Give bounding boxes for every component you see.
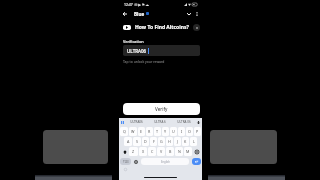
button[interactable]: F <box>150 137 157 146</box>
staticText: ULTRA06 <box>130 120 143 124</box>
button[interactable]: O <box>186 127 193 136</box>
button[interactable]: Enter <box>192 158 201 165</box>
staticText: N <box>178 149 181 154</box>
staticText: K <box>184 139 187 144</box>
button[interactable]: Verify <box>123 103 200 115</box>
button[interactable]: ULTRA 6 <box>148 118 172 126</box>
button[interactable]: More options <box>193 10 201 18</box>
staticText: Q <box>123 129 126 134</box>
staticText: ?123 <box>123 160 129 164</box>
button[interactable]: Y <box>162 127 169 136</box>
button[interactable]: Back <box>120 9 129 18</box>
button[interactable]: A <box>124 137 132 146</box>
button[interactable]: ULTRA06 <box>125 118 148 126</box>
staticText: R <box>148 129 151 134</box>
staticText: T <box>156 129 159 134</box>
button[interactable]: P <box>194 127 201 136</box>
staticText: U <box>172 129 175 134</box>
staticText: English <box>161 160 170 164</box>
staticText: W <box>131 129 135 134</box>
staticText: A <box>127 139 130 144</box>
button[interactable]: I <box>178 127 185 136</box>
staticText: P <box>196 129 199 134</box>
button[interactable]: ULTRA 06 <box>172 118 196 126</box>
button[interactable]: Q <box>120 127 128 136</box>
button[interactable]: Expand <box>185 10 193 18</box>
staticText: G <box>160 139 163 144</box>
button[interactable]: J <box>174 137 181 146</box>
staticText: B <box>169 149 172 154</box>
button[interactable] <box>43 130 108 164</box>
staticText: How To Find Altcoins? <box>135 24 189 31</box>
staticText: J <box>177 139 179 144</box>
staticText: V <box>160 149 163 154</box>
button[interactable]: Close <box>193 24 200 31</box>
staticText: ULTRA06 <box>127 48 147 54</box>
button[interactable]: Switch keyboard <box>133 158 139 165</box>
staticText: S <box>136 139 139 144</box>
button[interactable]: M <box>184 147 192 156</box>
staticText: ULTRA 6 <box>154 120 166 124</box>
staticText: Verification <box>123 39 144 44</box>
staticText: H <box>168 139 171 144</box>
button[interactable]: U <box>170 127 177 136</box>
staticText: C <box>151 149 154 154</box>
button[interactable]: N <box>175 147 183 156</box>
button[interactable] <box>210 130 277 164</box>
staticText: F <box>153 139 155 144</box>
button[interactable]: B <box>166 147 174 156</box>
button[interactable]: Z <box>129 147 138 156</box>
staticText: Verify <box>155 106 168 112</box>
button[interactable]: S <box>133 137 141 146</box>
button[interactable]: H <box>166 137 173 146</box>
staticText: D <box>144 139 147 144</box>
button[interactable]: E <box>138 127 145 136</box>
button[interactable]: X <box>139 147 147 156</box>
staticText: Blue <box>134 11 145 17</box>
staticText: I <box>181 129 183 134</box>
staticText: X <box>142 149 145 154</box>
staticText: E <box>140 129 143 134</box>
button[interactable]: D <box>142 137 149 146</box>
staticText: ULTRA 06 <box>177 120 191 124</box>
button[interactable]: ?123 <box>120 158 131 165</box>
staticText: Tap to unlock your reward <box>123 59 165 64</box>
staticText: M <box>186 149 190 154</box>
button[interactable]: W <box>129 127 137 136</box>
button[interactable]: V <box>157 147 165 156</box>
button[interactable]: G <box>158 137 165 146</box>
staticText: 12:47 ✉ ▶ ⚑ ☁ <box>124 2 149 7</box>
button[interactable]: Voice input <box>196 120 201 125</box>
button[interactable]: C <box>148 147 156 156</box>
staticText: Z <box>132 149 135 154</box>
button[interactable]: English <box>141 158 189 165</box>
staticText: O <box>188 129 191 134</box>
button[interactable]: Clipboard <box>120 120 125 125</box>
button[interactable]: R <box>146 127 153 136</box>
button[interactable]: ULTRA06 <box>123 45 200 56</box>
button[interactable]: K <box>182 137 189 146</box>
button[interactable]: T <box>154 127 161 136</box>
button[interactable]: Delete <box>192 147 201 156</box>
button[interactable]: L <box>190 137 197 146</box>
button[interactable]: Shift <box>120 147 129 156</box>
staticText: L <box>193 139 195 144</box>
staticText: Y <box>164 129 167 134</box>
